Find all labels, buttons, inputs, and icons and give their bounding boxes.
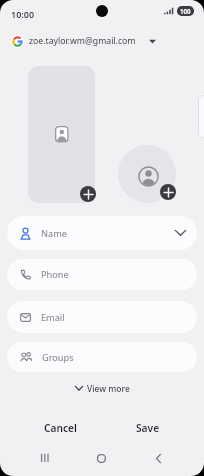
staticText: Name bbox=[41, 227, 67, 240]
staticText: 10:00 bbox=[11, 8, 35, 20]
button[interactable]: Cancel bbox=[0, 413, 102, 442]
button[interactable]: zoe.taylor.wm@gmail.com bbox=[0, 31, 204, 51]
staticText: Phone bbox=[41, 268, 69, 281]
button[interactable] bbox=[160, 184, 176, 200]
staticText: Email bbox=[41, 311, 65, 324]
button[interactable] bbox=[93, 446, 110, 470]
staticText: Save bbox=[136, 421, 160, 435]
staticText: 100 bbox=[180, 7, 191, 15]
staticText: Groups bbox=[42, 351, 74, 364]
button[interactable] bbox=[118, 145, 176, 203]
button[interactable]: Save bbox=[102, 413, 204, 442]
button[interactable]: Groups bbox=[7, 342, 197, 372]
button[interactable]: Phone bbox=[7, 259, 197, 290]
staticText: Cancel bbox=[44, 421, 77, 435]
button[interactable] bbox=[80, 186, 96, 202]
staticText: zoe.taylor.wm@gmail.com bbox=[29, 35, 136, 47]
button[interactable]: Email bbox=[7, 301, 197, 333]
button[interactable]: Name bbox=[7, 216, 197, 250]
button[interactable] bbox=[28, 66, 95, 203]
button[interactable] bbox=[150, 446, 167, 470]
staticText: View more bbox=[87, 383, 130, 395]
button[interactable]: View more bbox=[0, 381, 204, 396]
button[interactable] bbox=[36, 446, 53, 470]
